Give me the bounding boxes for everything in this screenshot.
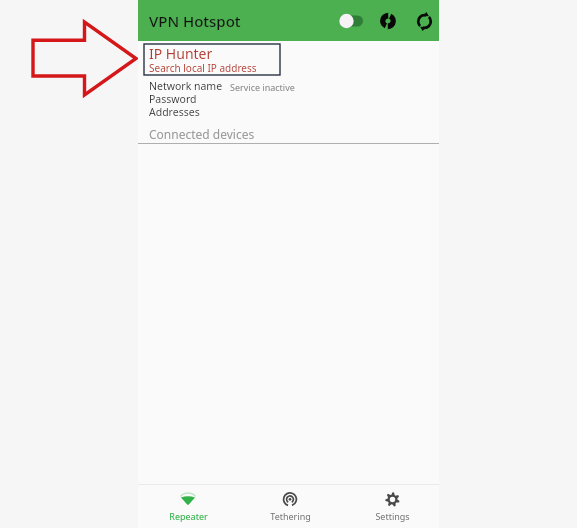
staticText: Addresses [149, 105, 200, 119]
staticText: Service inactive [230, 81, 295, 93]
staticText: VPN Hotspot [149, 11, 241, 31]
button[interactable]: Addresses [138, 105, 439, 119]
button[interactable]: Network name [138, 79, 439, 93]
button[interactable]: IP Hunter [144, 44, 280, 75]
staticText: Repeater [169, 510, 208, 522]
button[interactable]: Password [138, 92, 439, 106]
staticText: Network name [149, 79, 223, 93]
button[interactable]: Refresh [411, 8, 437, 34]
staticText: Settings [375, 510, 410, 522]
staticText: Search local IP address [149, 61, 257, 75]
staticText: Tethering [270, 510, 311, 522]
staticText: Connected devices [149, 126, 255, 140]
staticText: IP Hunter [149, 44, 213, 63]
button[interactable]: Swap connection [375, 8, 401, 34]
button[interactable]: Toggle hotspot [338, 6, 370, 36]
button[interactable]: Tethering [250, 485, 330, 528]
button[interactable]: Repeater [148, 485, 228, 528]
staticText: Password [149, 92, 197, 106]
button[interactable]: Settings [352, 485, 432, 528]
